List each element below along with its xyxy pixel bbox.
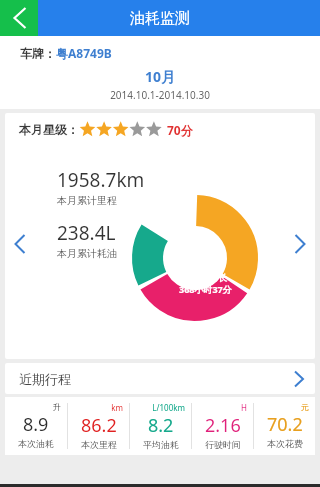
staticText: 元: [254, 402, 309, 412]
staticText: 平均油耗: [143, 439, 179, 450]
staticText: 近期行程: [19, 371, 71, 387]
staticText: 本次里程: [81, 439, 117, 450]
staticText: 238.4L: [57, 220, 116, 246]
staticText: 2014.10.1-2014.10.30: [0, 88, 320, 102]
button[interactable]: Previous month: [7, 231, 33, 257]
staticText: 升: [5, 402, 61, 412]
staticText: 70分: [167, 122, 193, 138]
button[interactable]: km: [68, 397, 129, 455]
staticText: 行驶时间: [205, 439, 241, 450]
staticText: 本月累计里程: [57, 194, 117, 207]
staticText: 粤A8749B: [56, 45, 112, 61]
button[interactable]: L/100km: [130, 397, 191, 455]
staticText: 70.2: [267, 412, 303, 437]
staticText: 8.9: [23, 412, 49, 437]
staticText: L/100km: [130, 402, 185, 413]
button[interactable]: 近期行程: [5, 363, 315, 394]
staticText: 10月: [0, 67, 320, 86]
staticText: 1958.7km: [57, 167, 145, 193]
staticText: H: [192, 402, 247, 413]
staticText: 驾驶时长: [191, 272, 227, 283]
button[interactable]: 升: [5, 397, 67, 455]
staticText: km: [68, 402, 123, 413]
button[interactable]: 元: [254, 397, 315, 455]
staticText: 本月累计耗油: [57, 247, 117, 260]
staticText: 油耗监测: [130, 9, 190, 28]
staticText: 车牌：: [20, 46, 56, 61]
staticText: 368小时37分: [179, 283, 232, 295]
button[interactable]: H: [192, 397, 253, 455]
staticText: 86.2: [81, 413, 117, 438]
staticText: 2.16: [205, 413, 241, 438]
staticText: 8.2: [148, 413, 174, 438]
staticText: 本月星级：: [19, 122, 79, 137]
staticText: 本次花费: [267, 438, 303, 449]
button[interactable]: Back: [0, 0, 38, 36]
button[interactable]: Next month: [287, 231, 313, 257]
staticText: 本次油耗: [18, 438, 54, 449]
